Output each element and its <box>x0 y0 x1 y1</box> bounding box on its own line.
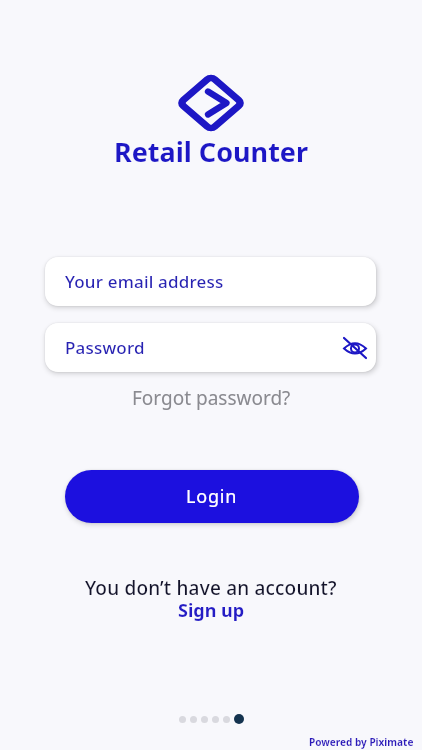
button[interactable]: Login <box>65 470 359 523</box>
button[interactable]: Sign up <box>178 598 245 623</box>
staticText: Password <box>65 336 145 359</box>
staticText: You don’t have an account? <box>85 575 337 601</box>
staticText: Retail Counter <box>0 133 422 170</box>
button[interactable] <box>342 336 368 360</box>
button[interactable]: Your email address <box>45 257 376 306</box>
staticText: Login <box>186 484 238 509</box>
button[interactable]: Forgot password? <box>132 385 291 411</box>
staticText: Powered by Piximate <box>309 735 414 749</box>
button[interactable]: Password <box>45 323 376 372</box>
staticText: Your email address <box>65 270 224 293</box>
